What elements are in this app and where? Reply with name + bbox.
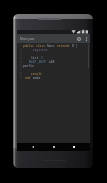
staticText: and [25, 76, 33, 80]
button[interactable]: Recent apps [71, 144, 77, 150]
button[interactable]: More options [83, 34, 89, 43]
staticText: result [31, 72, 42, 76]
staticText: 3 [20, 52, 22, 56]
button[interactable]: Home [51, 144, 57, 150]
staticText: a20 [47, 60, 55, 64]
staticText: 0x2F [29, 60, 37, 64]
staticText: 6 [20, 64, 22, 68]
staticText: Main.java [20, 37, 35, 41]
staticText: prefix [23, 64, 34, 68]
button[interactable]: Run [74, 34, 83, 43]
staticText: register [33, 48, 48, 52]
staticText: extends [57, 44, 72, 48]
staticText: 7 [20, 68, 22, 72]
staticText: 5 [20, 60, 22, 64]
staticText: class [36, 44, 47, 48]
staticText: list [31, 56, 41, 60]
staticText: mode [33, 76, 41, 80]
staticText: Nano [47, 44, 57, 48]
button[interactable]: Main.java [20, 37, 35, 41]
staticText: 2 [20, 48, 22, 52]
staticText: 1 [41, 56, 43, 60]
staticText: 1 [20, 44, 22, 48]
staticText: 0x7F [39, 60, 47, 64]
staticText: 8 [20, 72, 22, 76]
staticText: 9 [20, 76, 22, 80]
staticText: , [37, 60, 39, 64]
staticText: B { [72, 44, 78, 48]
staticText: 4 [20, 56, 22, 60]
staticText: public [23, 44, 36, 48]
button[interactable]: Back [30, 144, 36, 150]
